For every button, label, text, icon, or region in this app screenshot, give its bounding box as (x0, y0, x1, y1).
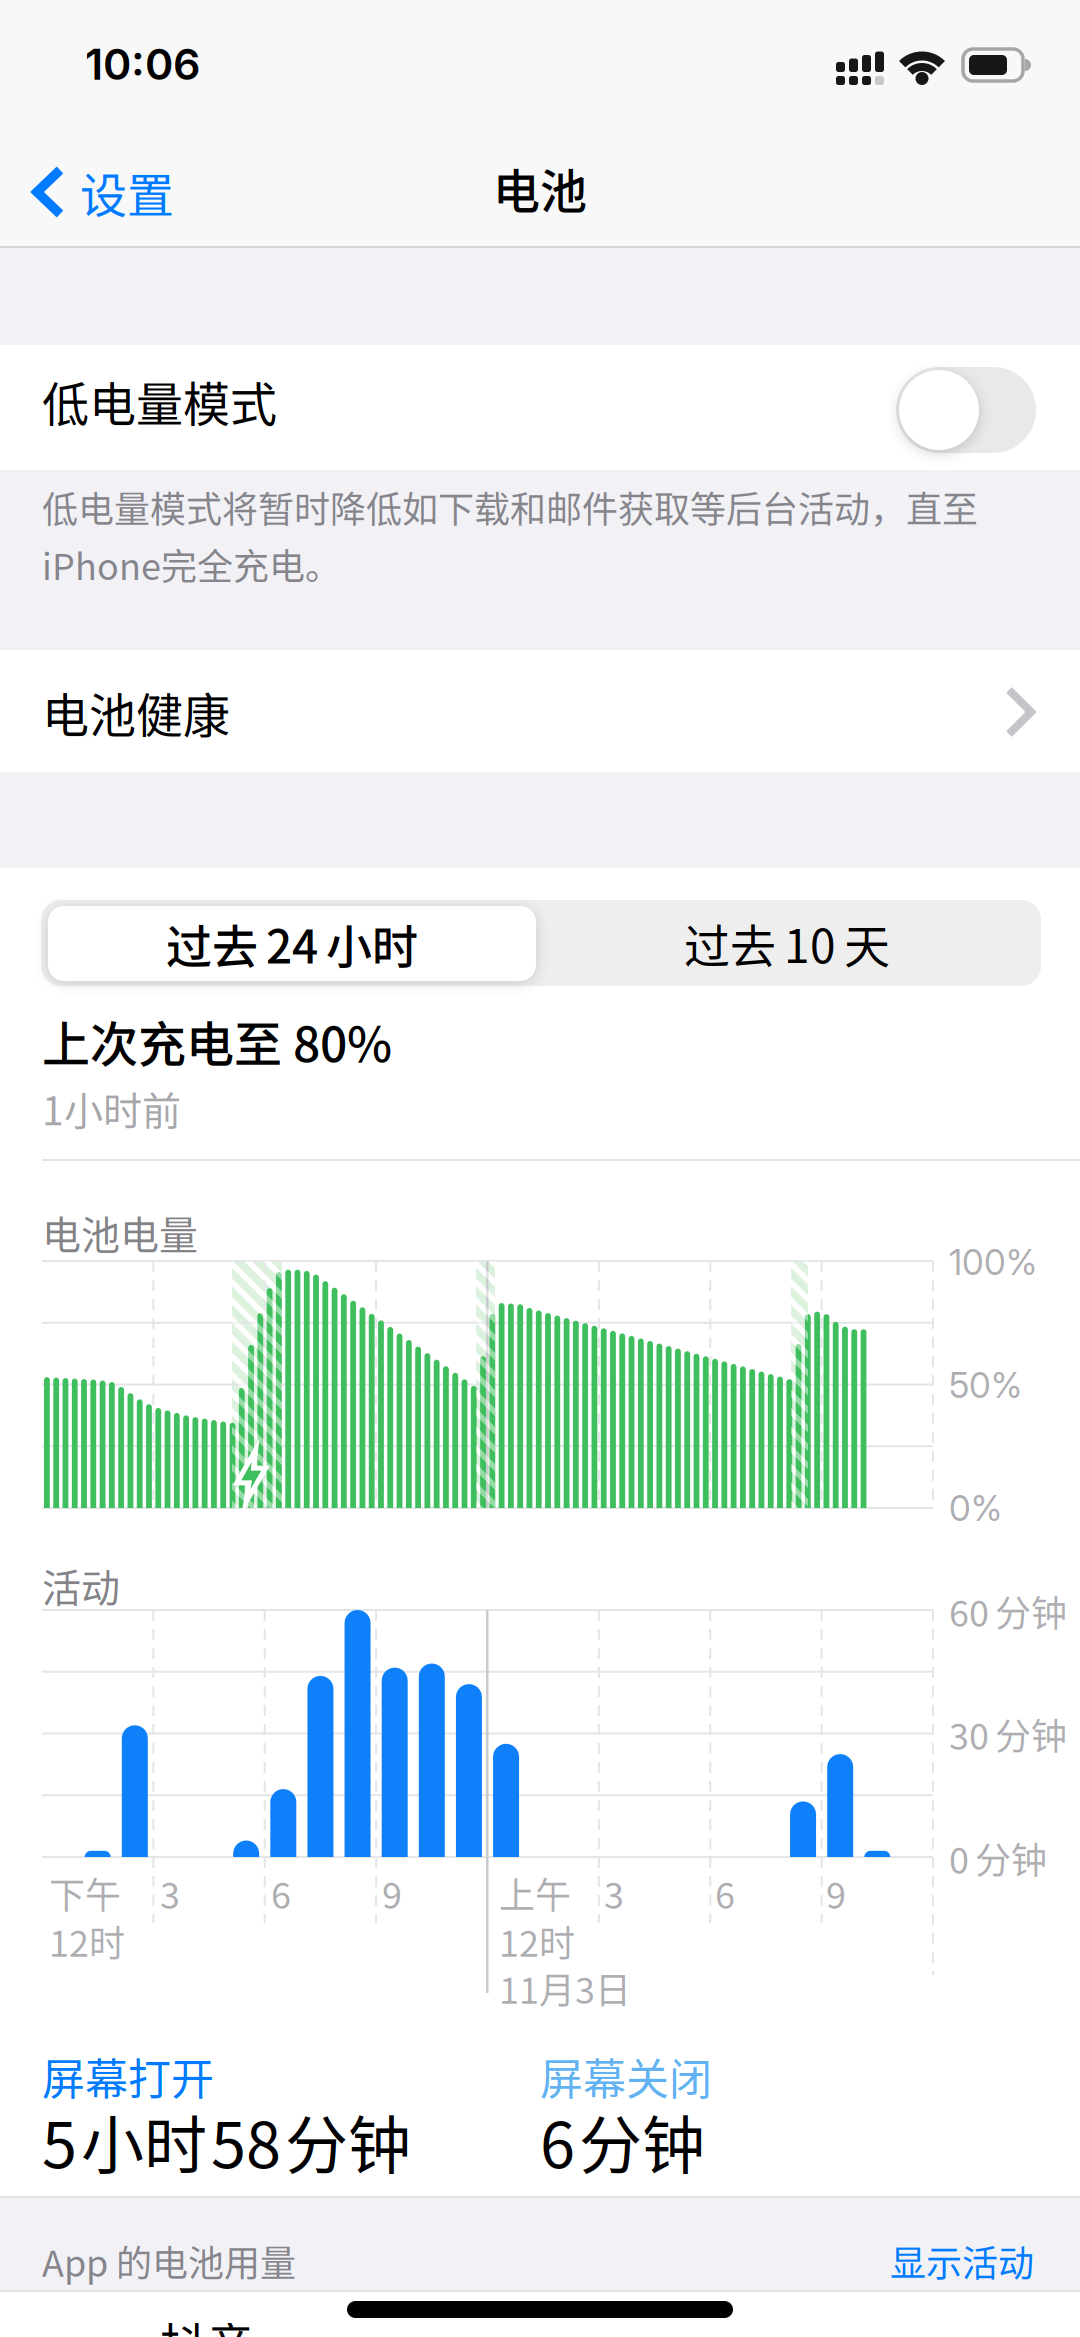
staticText: 3 (160, 1867, 180, 1919)
staticText: 过去 10 天 (684, 910, 890, 976)
staticText: 10:06 (85, 38, 201, 90)
staticText: 屏幕打开 (42, 2045, 214, 2107)
staticText: 电池健康 (42, 678, 230, 746)
staticText: 低电量模式将暂时降低如下载和邮件获取等后台活动，直至 iPhone完全充电。 (42, 481, 978, 590)
staticText: 3 (604, 1867, 624, 1919)
staticText: 60 分钟 (949, 1585, 1067, 1637)
staticText: 上午 (499, 1867, 571, 1919)
staticText: 12时 (499, 1915, 575, 1967)
staticText: 0% (949, 1487, 1002, 1529)
staticText: App 的电池用量 (42, 2235, 296, 2287)
button[interactable]: 过去 24 小时 (48, 906, 536, 981)
staticText: 5 小时 58 分钟 (42, 2095, 411, 2186)
button[interactable]: 低电量模式开关 (896, 367, 1036, 453)
staticText: 低电量模式 (42, 367, 277, 435)
staticText: 下午 (49, 1867, 121, 1919)
staticText: 9 (826, 1867, 846, 1919)
staticText: 1小时前 (42, 1080, 181, 1136)
staticText: 30 分钟 (949, 1708, 1067, 1760)
staticText: 12时 (49, 1915, 125, 1967)
staticText: 设置 (80, 158, 174, 226)
staticText: 50% (949, 1364, 1022, 1406)
button[interactable]: 电池健康 (0, 650, 1080, 772)
staticText: 屏幕关闭 (540, 2045, 712, 2107)
button[interactable]: 返回设置 (30, 152, 174, 232)
staticText: 6 分钟 (540, 2095, 705, 2186)
staticText: 6 (715, 1867, 735, 1919)
staticText: 显示活动 (890, 2235, 1034, 2287)
staticText: 电池电量 (42, 1204, 198, 1260)
staticText: 抖音 (160, 2308, 254, 2337)
staticText: 过去 24 小时 (166, 910, 418, 977)
staticText: 100% (949, 1241, 1037, 1283)
staticText: 9 (382, 1867, 402, 1919)
staticText: 上次充电至 80% (42, 1006, 392, 1075)
staticText: 11月3日 (499, 1962, 631, 2014)
staticText: 电池 (493, 154, 587, 222)
button[interactable]: 显示活动 (890, 2235, 1034, 2287)
staticText: 6 (271, 1867, 291, 1919)
staticText: 活动 (42, 1557, 120, 1613)
button[interactable]: 过去 10 天 (540, 903, 1034, 983)
staticText: 0 分钟 (949, 1832, 1047, 1884)
